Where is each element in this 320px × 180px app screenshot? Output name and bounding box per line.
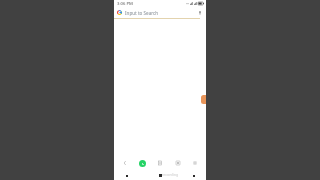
button[interactable]: Back [118, 156, 132, 170]
button[interactable]: Windows [171, 156, 185, 170]
staticText: 3:06 PM [117, 1, 133, 7]
button[interactable]: Settings [188, 156, 202, 170]
button[interactable]: System recents [189, 171, 198, 180]
button[interactable]: Open side panel [201, 95, 206, 104]
staticText: recording [147, 172, 193, 177]
button[interactable]: Input to Search [114, 7, 206, 18]
button[interactable]: Voice search [196, 9, 203, 16]
button[interactable]: System back [122, 171, 131, 180]
button[interactable]: System home [156, 171, 165, 180]
button[interactable]: Tabs [153, 156, 167, 170]
button[interactable]: WhatsApp [135, 156, 149, 170]
staticText: Input to Search [125, 10, 196, 16]
